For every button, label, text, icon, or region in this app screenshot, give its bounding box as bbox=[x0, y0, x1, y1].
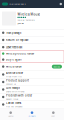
staticText: Hide from list bbox=[6, 75, 22, 78]
staticText: Delivered Sep 3 bbox=[9, 2, 25, 5]
staticText: Gift receipt bbox=[6, 86, 20, 90]
staticText: Orders bbox=[28, 114, 35, 117]
staticText: Report issue bbox=[6, 97, 18, 100]
staticText: Product support bbox=[6, 79, 29, 82]
button[interactable]: Orders bbox=[21, 109, 43, 120]
button[interactable]: Problem with order bbox=[0, 93, 64, 101]
staticText: Write a review bbox=[6, 65, 22, 68]
staticText: Archive order bbox=[6, 71, 23, 75]
button[interactable]: Leave feedback bbox=[0, 44, 64, 51]
button[interactable]: Track package bbox=[0, 29, 64, 36]
button[interactable]: Product support bbox=[0, 78, 64, 86]
staticText: Leave feedback bbox=[6, 45, 22, 49]
staticText: Home bbox=[8, 114, 13, 117]
button[interactable]: Gift receipt bbox=[0, 86, 64, 93]
button[interactable]: Cancel items bbox=[0, 101, 64, 108]
button[interactable]: Cart bbox=[43, 109, 64, 120]
button[interactable]: Home bbox=[0, 109, 21, 120]
staticText: Write a product review bbox=[6, 52, 34, 55]
staticText: Return or replace bbox=[6, 38, 28, 42]
button[interactable]: Archive order bbox=[0, 71, 64, 78]
staticText: Track package bbox=[6, 31, 21, 34]
button[interactable]: Write a product review bbox=[0, 51, 64, 57]
staticText: $24.99 bbox=[17, 22, 23, 25]
staticText: Cart bbox=[51, 114, 55, 117]
staticText: Cancel items bbox=[6, 101, 21, 105]
staticText: Not yet shipped bbox=[6, 105, 22, 108]
staticText: Contact us bbox=[6, 82, 16, 85]
staticText: Review bbox=[53, 65, 60, 68]
staticText: Sold by TechStore bbox=[17, 18, 34, 21]
button[interactable]: Wireless Mouse bbox=[0, 8, 64, 29]
button[interactable]: Write a review bbox=[0, 63, 64, 71]
staticText: Buy it again bbox=[6, 58, 22, 61]
button[interactable]: Menu bbox=[2, 2, 8, 5]
button[interactable]: Search bbox=[60, 3, 62, 5]
button[interactable]: Return or replace bbox=[0, 36, 64, 43]
staticText: Share with friend bbox=[6, 90, 24, 93]
staticText: Wireless Mouse bbox=[17, 12, 40, 16]
button[interactable]: Buy it again bbox=[0, 57, 64, 63]
staticText: Problem with order bbox=[6, 94, 32, 97]
